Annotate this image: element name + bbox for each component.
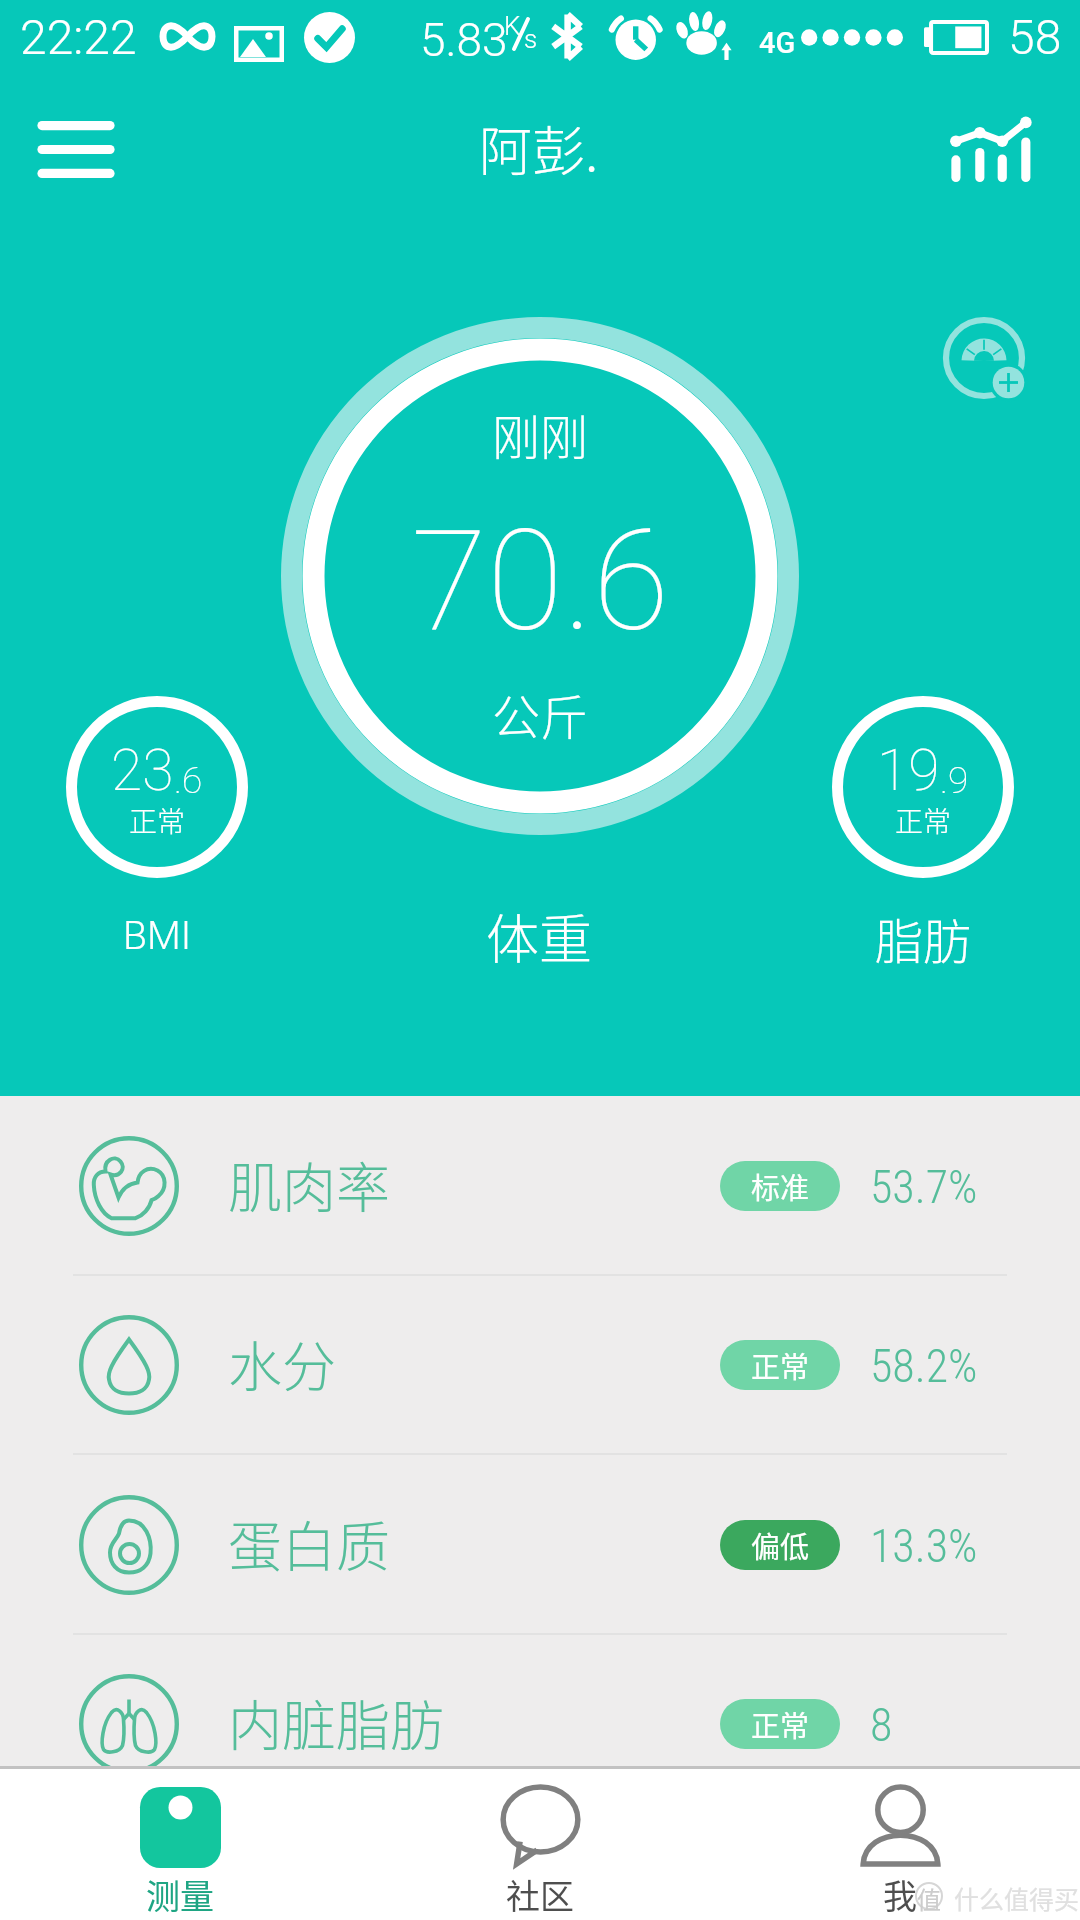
button[interactable]: 测量	[0, 1769, 360, 1920]
staticText: 公斤	[281, 679, 799, 749]
staticText: 正常	[61, 800, 253, 841]
button[interactable]: 肌肉率	[0, 1096, 1080, 1275]
staticText: 水分	[228, 1324, 336, 1402]
staticText: 偏低	[751, 1524, 810, 1566]
staticText: 社区	[506, 1870, 574, 1919]
staticText: BMI	[61, 913, 253, 959]
staticText: 8	[870, 1698, 893, 1752]
staticText: 我	[883, 1870, 917, 1919]
staticText: 体重	[439, 898, 639, 975]
staticText: 肌肉率	[228, 1145, 390, 1223]
staticText: 58.2%	[870, 1339, 978, 1393]
staticText: .9	[940, 759, 969, 802]
staticText: 阿彭.	[479, 110, 599, 187]
staticText: 58	[1008, 9, 1062, 65]
staticText: 4G	[759, 26, 796, 60]
staticText: 5.83	[420, 13, 508, 67]
staticText: 23	[111, 737, 174, 804]
staticText: 标准	[751, 1165, 810, 1207]
button[interactable]: 水分	[0, 1275, 1080, 1454]
staticText: 值	[917, 1881, 941, 1916]
staticText: 测量	[146, 1870, 214, 1919]
staticText: 刚刚	[281, 399, 799, 469]
staticText: 脂肪	[827, 903, 1019, 973]
staticText: 正常	[751, 1703, 810, 1745]
button[interactable]: 内脏脂肪	[0, 1634, 1080, 1813]
staticText: 19	[877, 737, 940, 804]
staticText: .6	[174, 759, 203, 802]
button[interactable]: 我	[720, 1769, 1080, 1920]
button[interactable]: Statistics	[926, 94, 1054, 206]
staticText: 13.3%	[870, 1519, 978, 1573]
staticText: 正常	[751, 1344, 810, 1386]
staticText: K	[504, 11, 521, 41]
staticText: 53.7%	[870, 1160, 978, 1214]
staticText: s	[524, 24, 538, 54]
staticText: 70.6	[281, 500, 799, 663]
staticText: 蛋白质	[228, 1504, 390, 1582]
button[interactable]: Add measurement	[928, 302, 1040, 414]
button[interactable]: Menu	[14, 96, 138, 204]
staticText: 什么值得买	[954, 1880, 1080, 1916]
staticText: 22:22	[20, 9, 137, 65]
staticText: 内脏脂肪	[228, 1683, 444, 1761]
button[interactable]: 蛋白质	[0, 1455, 1080, 1634]
button[interactable]: 社区	[360, 1769, 720, 1920]
staticText: 正常	[827, 800, 1019, 841]
